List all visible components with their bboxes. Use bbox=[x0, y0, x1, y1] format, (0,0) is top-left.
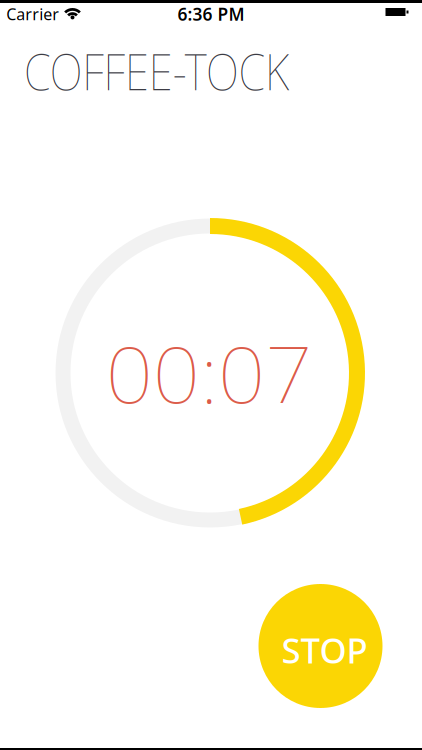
button[interactable]: STOP bbox=[258, 584, 382, 708]
staticText: Carrier bbox=[6, 3, 59, 25]
staticText: 00:07 bbox=[112, 322, 305, 424]
staticText: 6:36 PM bbox=[177, 2, 244, 25]
staticText: COFFEE-TOCK bbox=[24, 37, 334, 104]
staticText: STOP bbox=[281, 627, 367, 673]
